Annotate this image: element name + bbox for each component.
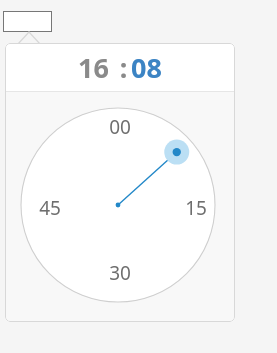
button[interactable]: 30 (103, 260, 137, 284)
button[interactable]: Minute clock dial (5, 92, 235, 322)
button[interactable]: 45 (33, 195, 67, 219)
button[interactable]: 00 (103, 114, 137, 138)
staticText: 15 (185, 195, 207, 219)
button[interactable]: Time input field (3, 11, 52, 32)
staticText: 00 (109, 114, 131, 138)
staticText: : (109, 49, 131, 86)
button[interactable]: 15 (179, 195, 213, 219)
staticText: 30 (109, 260, 131, 284)
button[interactable]: 16 (78, 49, 109, 86)
button[interactable]: 08 (131, 49, 162, 86)
staticText: 45 (39, 195, 61, 219)
